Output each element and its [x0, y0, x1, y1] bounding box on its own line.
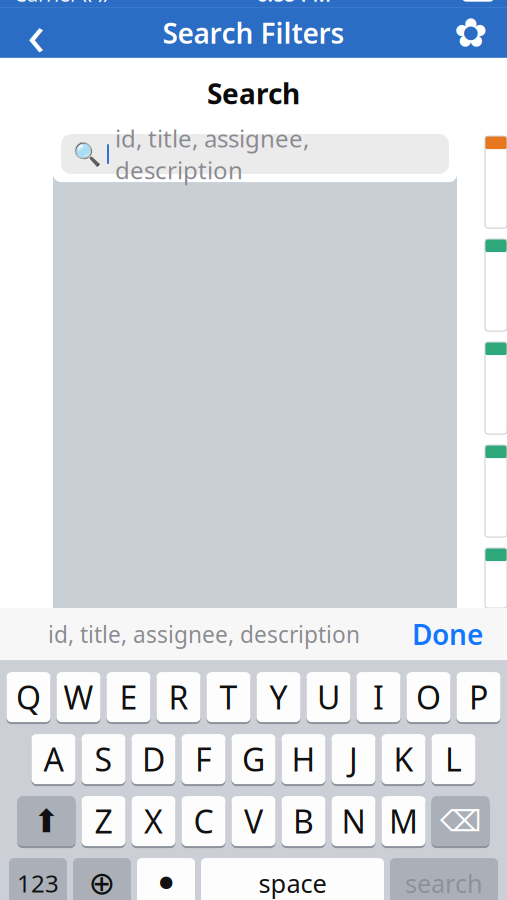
button[interactable]: ⊕ — [73, 858, 131, 900]
button[interactable]: E — [106, 672, 150, 724]
staticText: ⬆ — [33, 803, 60, 839]
staticText: R — [168, 676, 188, 718]
button[interactable]: A — [31, 734, 75, 786]
button[interactable]: ⏺ — [137, 858, 195, 900]
staticText: U — [317, 676, 340, 718]
button[interactable]: W — [56, 672, 100, 724]
button[interactable]: Settings — [441, 8, 501, 58]
button[interactable]: Q — [6, 672, 50, 724]
staticText: J — [349, 738, 358, 780]
staticText: search — [405, 866, 483, 900]
staticText: 6:55 PM — [256, 0, 331, 7]
staticText: Search Filters — [162, 14, 344, 51]
staticText: Done — [412, 615, 483, 653]
staticText: G — [242, 738, 265, 780]
button[interactable]: P — [456, 672, 500, 724]
button[interactable]: B — [281, 796, 325, 848]
staticText: S — [94, 738, 112, 780]
button[interactable]: M — [381, 796, 425, 848]
button[interactable]: 123 — [9, 858, 67, 900]
staticText: B — [293, 800, 314, 842]
button[interactable]: R — [156, 672, 200, 724]
button[interactable]: ⌫ — [431, 796, 489, 848]
button[interactable]: K — [381, 734, 425, 786]
staticText: ⊕ — [88, 865, 115, 900]
button[interactable]: U — [306, 672, 350, 724]
button[interactable]: H — [281, 734, 325, 786]
staticText: 123 — [17, 867, 59, 899]
staticText: D — [142, 738, 165, 780]
staticText: Y — [269, 676, 287, 718]
staticText: N — [341, 800, 365, 842]
button[interactable]: D — [131, 734, 175, 786]
staticText: Z — [94, 800, 112, 842]
button[interactable]: C — [181, 796, 225, 848]
staticText: ✿ — [454, 10, 488, 56]
button[interactable]: J — [331, 734, 375, 786]
staticText: H — [291, 738, 315, 780]
button[interactable]: L — [431, 734, 475, 786]
button[interactable]: O — [406, 672, 450, 724]
staticText: W — [63, 676, 93, 718]
button[interactable]: T — [206, 672, 250, 724]
staticText: space — [258, 866, 326, 900]
staticText: O — [416, 676, 441, 718]
button[interactable]: Back — [6, 8, 66, 58]
button[interactable]: Y — [256, 672, 300, 724]
staticText: ⌫ — [440, 804, 481, 838]
staticText: T — [219, 676, 237, 718]
button[interactable]: I — [356, 672, 400, 724]
staticText: I — [373, 676, 384, 718]
staticText: ‹ — [27, 0, 45, 72]
staticText: id, title, assignee, description — [115, 122, 309, 186]
button[interactable]: S — [81, 734, 125, 786]
button[interactable]: space — [201, 858, 384, 900]
staticText: Search — [207, 75, 300, 112]
staticText: ((•)) — [78, 0, 108, 4]
button[interactable]: ⬆ — [17, 796, 75, 848]
staticText: Q — [16, 676, 41, 718]
staticText: L — [445, 738, 462, 780]
button[interactable]: Z — [81, 796, 125, 848]
button[interactable]: F — [181, 734, 225, 786]
button[interactable]: Done — [398, 607, 497, 661]
button[interactable]: N — [331, 796, 375, 848]
staticText: E — [119, 676, 137, 718]
button[interactable]: X — [131, 796, 175, 848]
staticText: A — [43, 738, 63, 780]
button[interactable]: G — [231, 734, 275, 786]
button[interactable]: search — [390, 858, 498, 900]
staticText: ⏺ — [159, 870, 172, 896]
staticText: 🔍 — [73, 141, 101, 167]
staticText: id, title, assignee, description — [48, 619, 360, 649]
staticText: F — [195, 738, 212, 780]
staticText: X — [144, 800, 163, 842]
staticText: P — [469, 676, 488, 718]
staticText: V — [244, 800, 263, 842]
staticText: K — [393, 738, 413, 780]
staticText: Carrier — [14, 0, 78, 7]
staticText: C — [193, 800, 213, 842]
button[interactable]: V — [231, 796, 275, 848]
staticText: M — [389, 800, 418, 842]
